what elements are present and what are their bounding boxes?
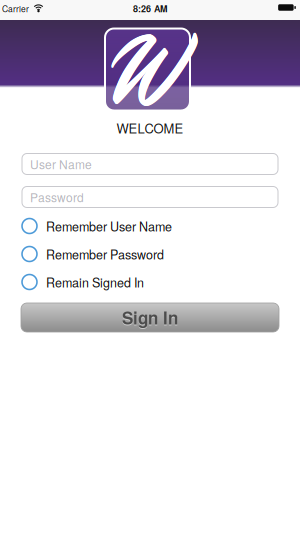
staticText: Remember User Name <box>46 217 172 235</box>
button[interactable]: Remember User Name <box>22 215 278 237</box>
staticText: W <box>103 4 186 145</box>
staticText: Carrier <box>2 2 29 15</box>
staticText: W <box>104 3 187 144</box>
button[interactable]: Sign In <box>21 303 279 332</box>
staticText: W <box>104 4 187 145</box>
staticText: User Name <box>30 155 92 173</box>
staticText: W <box>103 3 186 145</box>
staticText: 8:26 AM <box>133 2 167 15</box>
staticText: W <box>103 3 186 144</box>
staticText: Remain Signed In <box>46 273 144 291</box>
button[interactable]: Remain Signed In <box>22 271 278 293</box>
button[interactable]: User Name <box>22 153 278 174</box>
staticText: Sign In <box>122 306 178 331</box>
staticText: WELCOME <box>116 119 183 137</box>
staticText: Remember Password <box>46 245 164 263</box>
button[interactable]: Password <box>22 186 278 207</box>
staticText: Sign In <box>122 305 178 330</box>
button[interactable]: Remember Password <box>22 243 278 265</box>
staticText: Password <box>30 188 84 206</box>
